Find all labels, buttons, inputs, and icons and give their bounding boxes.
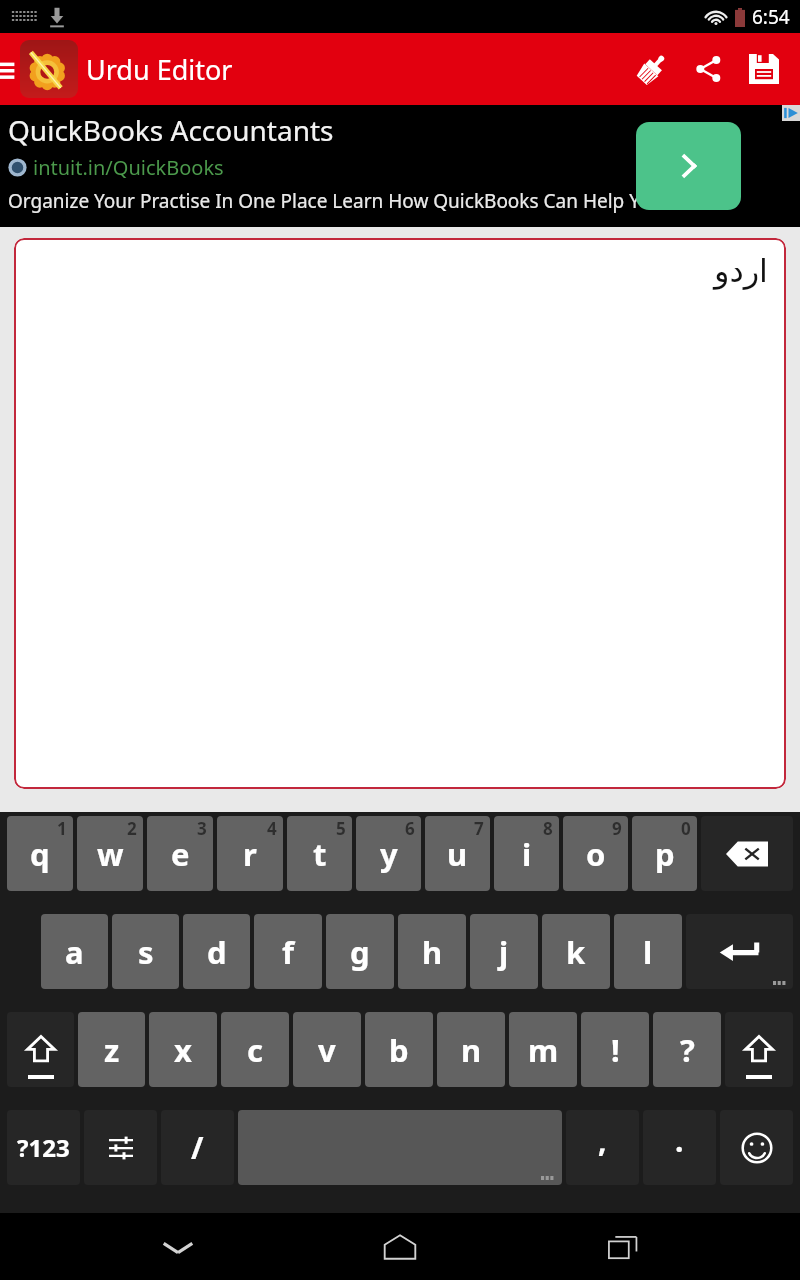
button[interactable]: n [437,1012,505,1087]
staticText: o [586,833,606,875]
staticText: h [422,931,443,973]
button[interactable]: Shift [7,1012,74,1087]
button[interactable]: l [614,914,682,989]
button[interactable]: Home [355,1213,445,1280]
staticText: c [247,1029,263,1071]
staticText: QuickBooks Accountants [8,111,334,149]
staticText: اردو [14,252,768,289]
button[interactable]: QuickBooks Accountants [0,105,800,227]
staticText: j [499,931,509,973]
button[interactable]: Hide keyboard [133,1213,223,1280]
button[interactable]: c [221,1012,289,1087]
staticText: / [191,1127,204,1168]
button[interactable]: p [632,816,697,891]
staticText: 3 [197,817,207,840]
staticText: z [104,1029,120,1071]
staticText: t [313,833,327,875]
button[interactable]: اردو [14,238,786,789]
button[interactable]: w [77,816,143,891]
button[interactable]: y [356,816,421,891]
staticText: a [65,931,84,973]
staticText: d [207,931,227,973]
staticText: Urdu Editor [86,51,233,88]
staticText: 2 [127,817,137,840]
staticText: 0 [681,817,691,840]
button[interactable]: ! [581,1012,649,1087]
staticText: s [138,931,154,973]
staticText: . [675,1120,684,1161]
button[interactable]: Backspace [701,816,793,891]
staticText: n [461,1029,482,1071]
button[interactable]: x [149,1012,217,1087]
button[interactable]: h [398,914,466,989]
staticText: f [282,931,294,973]
button[interactable]: Input settings [84,1110,157,1185]
staticText: , [598,1120,607,1161]
staticText: k [566,931,586,973]
staticText: 7 [474,817,484,840]
button[interactable]: t [287,816,352,891]
button[interactable]: f [254,914,322,989]
staticText: u [447,833,468,875]
button[interactable]: q [7,816,73,891]
button[interactable]: Navigation drawer [0,49,18,89]
staticText: 8 [543,817,553,840]
button[interactable]: Share [680,33,736,105]
button[interactable]: Open ad [636,122,741,210]
button[interactable]: u [425,816,490,891]
button[interactable]: Recents [578,1213,668,1280]
staticText: 5 [336,817,346,840]
button[interactable]: Brush [624,33,680,105]
button[interactable]: g [326,914,394,989]
button[interactable]: k [542,914,610,989]
button[interactable]: e [147,816,213,891]
staticText: g [350,931,370,973]
staticText: q [30,833,50,875]
button[interactable]: Save [736,33,792,105]
button[interactable]: j [470,914,538,989]
staticText: e [171,833,190,875]
staticText: ?123 [17,1131,70,1164]
button[interactable]: v [293,1012,361,1087]
button[interactable]: Period [643,1110,716,1185]
button[interactable]: ? [653,1012,721,1087]
staticText: l [643,931,653,973]
staticText: 6:54 [752,4,790,30]
staticText: m [528,1029,559,1071]
staticText: r [243,833,257,875]
staticText: intuit.in/QuickBooks [33,154,224,181]
button[interactable]: Shift [725,1012,793,1087]
button[interactable]: Enter [686,914,793,989]
button[interactable]: Symbols [7,1110,80,1185]
button[interactable]: d [183,914,250,989]
button[interactable]: Slash [161,1110,234,1185]
staticText: i [522,833,532,875]
button[interactable]: s [112,914,179,989]
button[interactable]: b [365,1012,433,1087]
button[interactable]: m [509,1012,577,1087]
staticText: 6 [405,817,415,840]
staticText: ! [611,1029,620,1071]
button[interactable]: Ad choices [782,105,800,121]
staticText: 1 [57,817,67,840]
button[interactable]: r [217,816,283,891]
staticText: v [318,1029,336,1071]
staticText: 4 [267,817,277,840]
button[interactable]: i [494,816,559,891]
button[interactable]: z [78,1012,145,1087]
staticText: 9 [612,817,622,840]
staticText: p [655,833,675,875]
staticText: y [380,833,398,875]
staticText: w [97,833,124,875]
button[interactable]: a [41,914,108,989]
staticText: b [389,1029,409,1071]
staticText: Organize Your Practise In One Place Lear… [8,188,668,214]
staticText: ? [680,1029,695,1071]
button[interactable]: Comma [566,1110,639,1185]
staticText: x [174,1029,192,1071]
button[interactable]: o [563,816,628,891]
button[interactable]: Emoji [720,1110,793,1185]
